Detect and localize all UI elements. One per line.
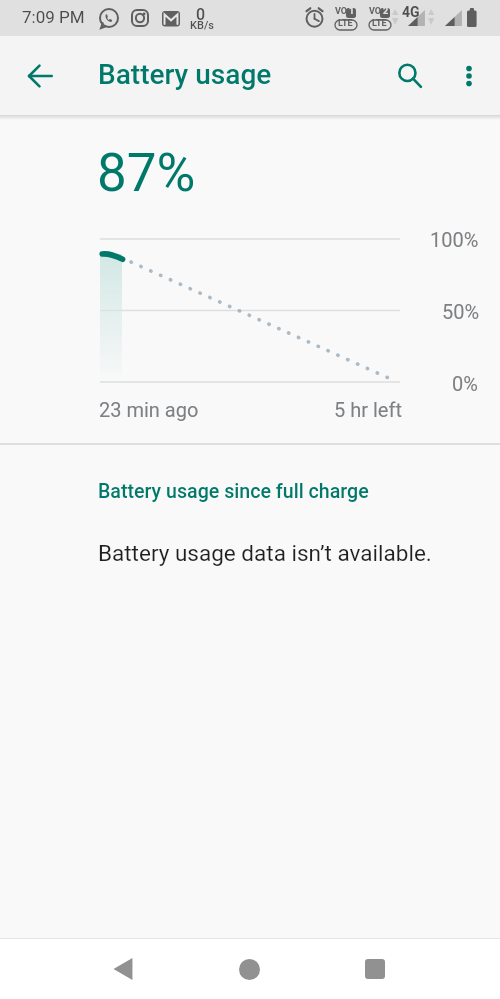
staticText: 23 min ago bbox=[99, 398, 199, 421]
staticText: 1 bbox=[349, 6, 355, 17]
button[interactable]: Recent apps bbox=[312, 939, 437, 999]
staticText: 0% bbox=[452, 372, 478, 395]
button[interactable]: More options bbox=[443, 50, 495, 102]
button[interactable]: Home bbox=[187, 939, 312, 999]
button[interactable]: Back bbox=[63, 939, 187, 999]
staticText: 4G bbox=[402, 4, 420, 20]
staticText: 50% bbox=[442, 300, 480, 323]
staticText: LTE bbox=[372, 18, 387, 29]
staticText: 0 bbox=[196, 5, 206, 24]
staticText: 100% bbox=[430, 228, 479, 251]
staticText: VO bbox=[369, 6, 382, 17]
staticText: VO bbox=[335, 6, 348, 17]
staticText: 7:09 PM bbox=[22, 7, 85, 27]
staticText: KB/s bbox=[190, 19, 214, 32]
staticText: Battery usage bbox=[98, 58, 272, 91]
button[interactable]: Search bbox=[384, 50, 436, 102]
staticText: LTE bbox=[338, 18, 353, 29]
staticText: 2 bbox=[383, 6, 389, 17]
button[interactable]: Back bbox=[12, 48, 68, 104]
staticText: 87% bbox=[97, 142, 196, 204]
staticText: Battery usage since full charge bbox=[98, 480, 369, 503]
staticText: Battery usage data isn’t available. bbox=[98, 540, 432, 566]
staticText: 5 hr left bbox=[334, 398, 402, 421]
